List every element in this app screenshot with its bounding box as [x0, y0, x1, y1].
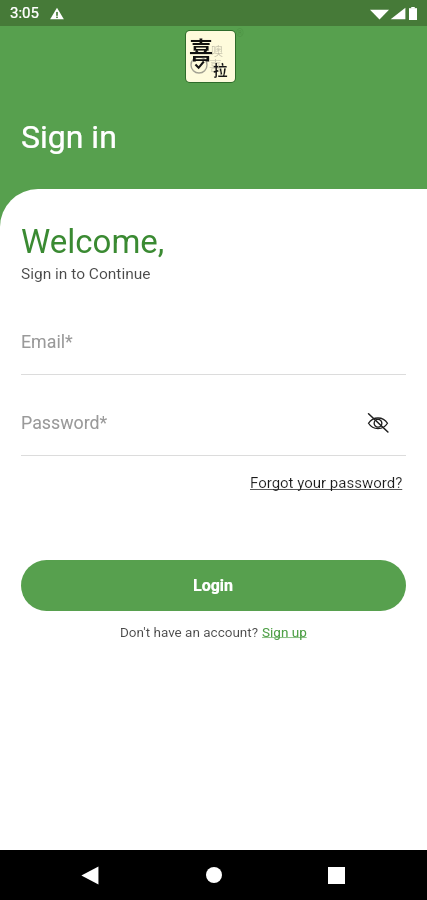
staticText: Sign in	[21, 118, 117, 156]
button[interactable]: Forgot your password?	[250, 474, 403, 492]
staticText: 喜	[209, 55, 223, 74]
staticText: 噢	[211, 42, 224, 59]
staticText: Forgot your password?	[250, 474, 403, 492]
staticText: Password*	[21, 412, 108, 433]
staticText: Welcome,	[21, 222, 165, 261]
staticText: 3:05	[10, 4, 39, 22]
staticText: Email*	[21, 331, 73, 352]
staticText: 喜	[189, 31, 213, 66]
staticText: Don't have an account?	[120, 624, 262, 640]
button[interactable]: Login	[21, 560, 406, 611]
button[interactable]: Back	[66, 851, 114, 899]
staticText: Sign up	[262, 624, 307, 640]
staticText: Login	[193, 576, 234, 595]
button[interactable]: Show password	[365, 410, 391, 434]
button[interactable]: Recents	[312, 851, 360, 899]
button[interactable]: Home	[190, 851, 238, 899]
staticText: Sign in to Continue	[21, 265, 151, 283]
button[interactable]: Sign up	[262, 624, 307, 640]
staticText: 拉	[213, 59, 228, 80]
